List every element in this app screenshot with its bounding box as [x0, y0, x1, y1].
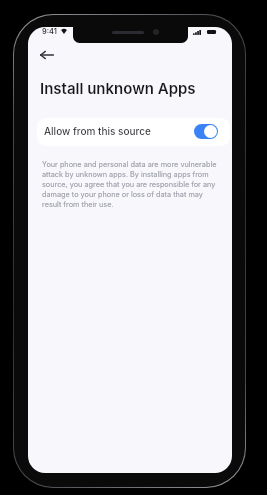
staticText: 9:41	[42, 27, 57, 36]
button[interactable]: Allow from this source	[37, 118, 230, 146]
staticText: Your phone and personal data are more vu…	[42, 160, 218, 209]
staticText: Allow from this source	[44, 125, 151, 137]
button[interactable]: Back	[34, 42, 60, 68]
staticText: Install unknown Apps	[40, 79, 196, 97]
